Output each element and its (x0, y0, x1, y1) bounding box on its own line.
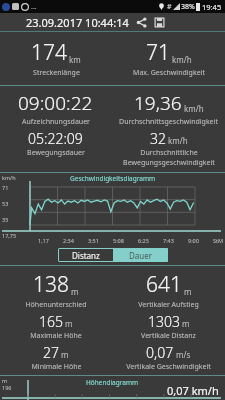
staticText: Dauer (129, 250, 153, 261)
staticText: 1,17 (38, 237, 49, 244)
staticText: 9:00 (188, 237, 199, 244)
staticText: Geschwindigkeitsdiagramm (70, 174, 156, 183)
button[interactable]: Share (135, 16, 148, 29)
staticText: Maximale Höhe (30, 331, 82, 341)
staticText: m (184, 286, 192, 297)
staticText: m (65, 318, 73, 329)
staticText: 17,75 (2, 232, 17, 239)
staticText: 174 (31, 38, 67, 67)
staticText: km (69, 54, 81, 65)
staticText: 5:08 (113, 237, 124, 244)
staticText: Bewegungsgeschwindigkeit (123, 158, 215, 168)
staticText: ... (31, 2, 37, 12)
staticText: km/h (168, 135, 188, 146)
staticText: 09:00:22 (18, 90, 93, 116)
button[interactable]: Save (153, 16, 166, 29)
staticText: 196 (2, 384, 12, 391)
staticText: 05:22:09 (28, 129, 83, 148)
staticText: Streckenlänge (33, 68, 80, 78)
staticText: 0,07 (146, 343, 174, 362)
staticText: Max. Geschwindigkeit (133, 68, 205, 78)
staticText: 53 (2, 200, 9, 207)
staticText: 7:43 (163, 237, 174, 244)
staticText: m (2, 377, 8, 384)
staticText: 38% (181, 2, 195, 12)
staticText: 19:45 (202, 2, 222, 12)
staticText: 138 (33, 270, 69, 299)
staticText: 27 (43, 343, 59, 362)
staticText: 0,07 km/h (167, 383, 219, 398)
staticText: 165 (39, 312, 63, 331)
staticText: Minimale Höhe (31, 362, 82, 372)
staticText: Vertikale Distanz (141, 331, 196, 341)
staticText: m (61, 349, 69, 360)
staticText: Vertikaler Aufstieg (138, 300, 199, 310)
button[interactable]: Dauer (113, 248, 168, 262)
staticText: km/h (184, 103, 204, 114)
staticText: Bewegungsdauer (27, 148, 85, 158)
staticText: 23.09.2017 10:44:14 (26, 15, 129, 30)
staticText: 641 (146, 270, 182, 299)
staticText: # (167, 2, 172, 12)
staticText: 71 (146, 38, 170, 67)
staticText: Vertikale Geschwindigkeit (126, 362, 211, 372)
staticText: 3:51 (88, 237, 99, 244)
staticText: Höhendiagramm (86, 378, 139, 387)
staticText: Distanz (72, 250, 100, 261)
staticText: 2:34 (63, 237, 74, 244)
staticText: StM (213, 237, 223, 244)
staticText: m (182, 318, 190, 329)
staticText: 6:25 (138, 237, 149, 244)
staticText: Durchschnittliche (140, 148, 198, 158)
staticText: 19,36 (134, 90, 182, 116)
staticText: m/s (176, 349, 191, 360)
staticText: 35 (2, 216, 9, 223)
staticText: 1303 (148, 312, 180, 331)
staticText: km/h (2, 174, 16, 181)
staticText: 32 (150, 129, 166, 148)
staticText: Durchschnittsgeschwindigkeit (119, 117, 218, 127)
staticText: Höhenunterschied (25, 300, 87, 310)
button[interactable]: Distanz (58, 248, 113, 262)
staticText: m (71, 286, 79, 297)
staticText: 71 (2, 184, 9, 191)
staticText: km/h (172, 54, 192, 65)
staticText: Aufzeichnungsdauer (22, 117, 90, 127)
